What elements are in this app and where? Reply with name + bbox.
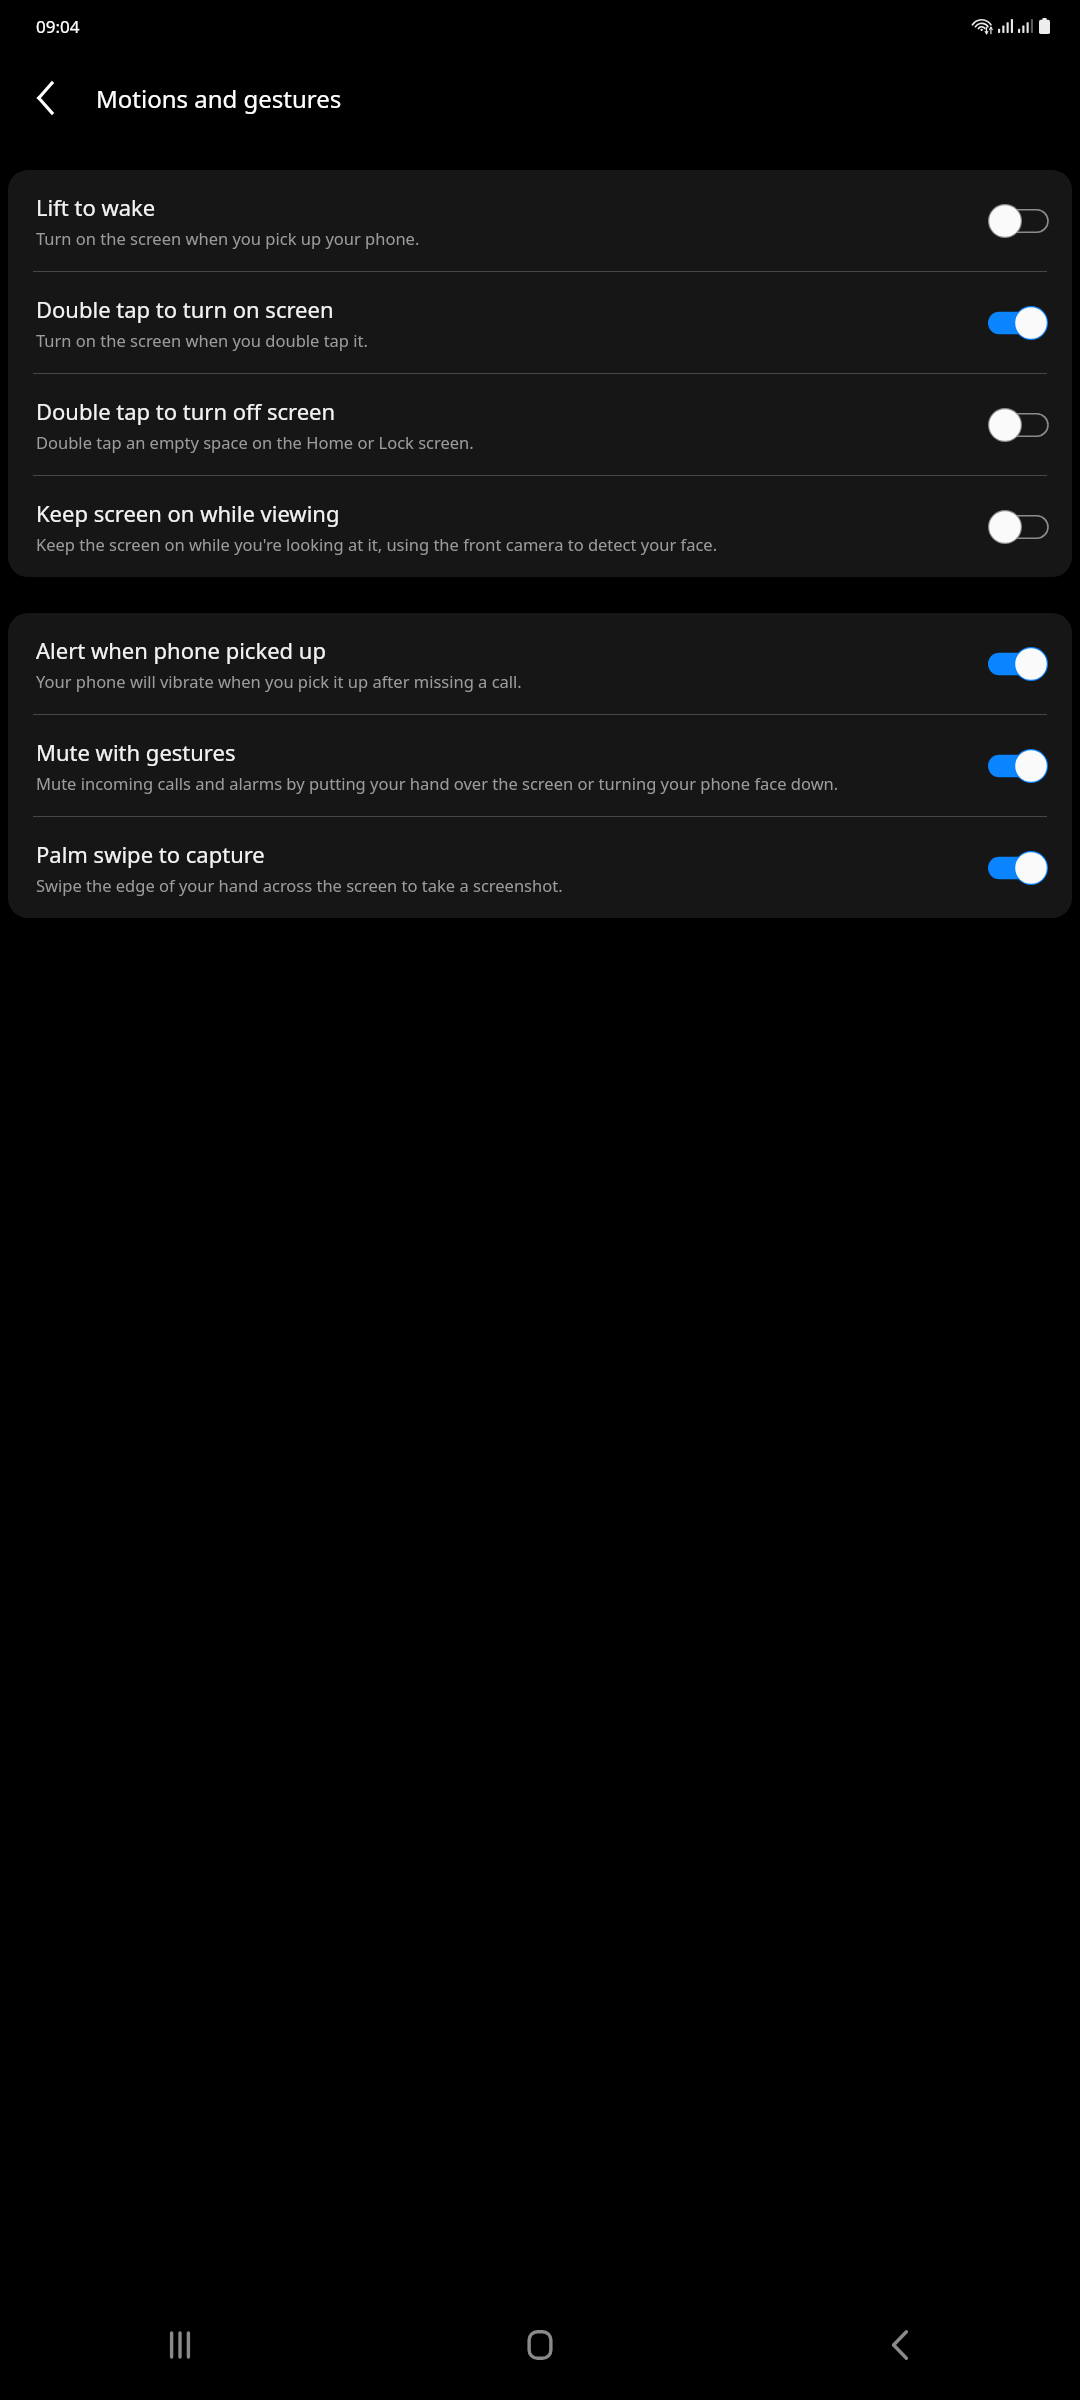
- button[interactable]: Toggle off: [988, 204, 1048, 238]
- button[interactable]: Mute with gestures: [8, 715, 1072, 816]
- button[interactable]: Recents: [0, 2290, 360, 2400]
- button[interactable]: Back: [18, 70, 74, 126]
- staticText: Double tap to turn off screen: [36, 396, 336, 426]
- button[interactable]: Lift to wake: [8, 170, 1072, 271]
- button[interactable]: Back: [720, 2290, 1080, 2400]
- staticText: Mute incoming calls and alarms by puttin…: [36, 772, 839, 794]
- button[interactable]: Palm swipe to capture: [8, 817, 1072, 918]
- staticText: 09:04: [36, 15, 80, 38]
- staticText: Your phone will vibrate when you pick it…: [36, 670, 522, 692]
- button[interactable]: Toggle on: [988, 306, 1048, 340]
- button[interactable]: Toggle on: [988, 647, 1048, 681]
- staticText: Keep the screen on while you're looking …: [36, 533, 718, 555]
- staticText: Double tap an empty space on the Home or…: [36, 431, 474, 453]
- button[interactable]: Toggle on: [988, 749, 1048, 783]
- staticText: Keep screen on while viewing: [36, 498, 340, 528]
- staticText: Lift to wake: [36, 192, 156, 222]
- button[interactable]: Toggle off: [988, 408, 1048, 442]
- staticText: Turn on the screen when you double tap i…: [36, 329, 368, 351]
- staticText: Mute with gestures: [36, 737, 236, 767]
- staticText: Turn on the screen when you pick up your…: [36, 227, 420, 249]
- button[interactable]: Double tap to turn on screen: [8, 272, 1072, 373]
- button[interactable]: Home: [360, 2290, 720, 2400]
- staticText: Swipe the edge of your hand across the s…: [36, 874, 563, 896]
- button[interactable]: Alert when phone picked up: [8, 613, 1072, 714]
- button[interactable]: Toggle on: [988, 851, 1048, 885]
- button[interactable]: Toggle off: [988, 510, 1048, 544]
- staticText: Palm swipe to capture: [36, 839, 265, 869]
- button[interactable]: Keep screen on while viewing: [8, 476, 1072, 577]
- button[interactable]: Double tap to turn off screen: [8, 374, 1072, 475]
- staticText: Double tap to turn on screen: [36, 294, 334, 324]
- staticText: Motions and gestures: [96, 82, 342, 115]
- staticText: Alert when phone picked up: [36, 635, 326, 665]
